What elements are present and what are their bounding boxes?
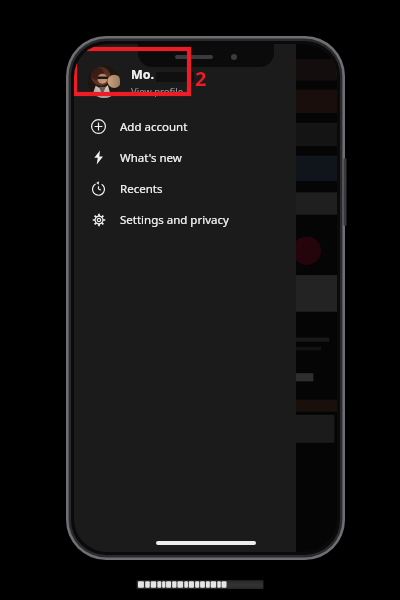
other: Settings and privacy xyxy=(91,212,107,228)
button[interactable]: Settings and privacy xyxy=(74,204,296,235)
staticText: What's new xyxy=(120,150,182,166)
staticText: View profile xyxy=(131,85,184,98)
button[interactable]: Add account xyxy=(74,111,296,142)
button[interactable]: Recents xyxy=(74,173,296,204)
other: Recents xyxy=(91,181,106,196)
staticText: Add account xyxy=(120,119,188,135)
other: Add account xyxy=(91,119,106,134)
staticText: Settings and privacy xyxy=(120,212,229,228)
other: What's new xyxy=(91,150,106,165)
staticText: 2 xyxy=(195,65,207,92)
button[interactable]: What's new xyxy=(74,142,296,173)
staticText: Recents xyxy=(120,181,163,197)
staticText: Mo. xyxy=(131,66,155,83)
button[interactable]: Mo. xyxy=(74,60,296,104)
